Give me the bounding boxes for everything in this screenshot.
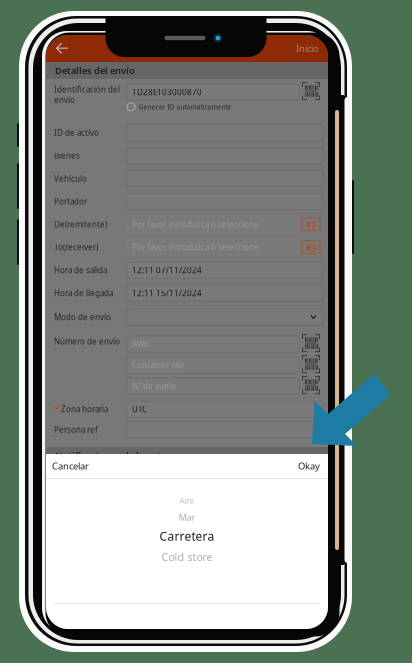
staticText: AWB	[132, 339, 149, 349]
staticText: Número de envío	[54, 336, 120, 347]
staticText: Aire	[179, 495, 194, 506]
button[interactable]: Portador	[46, 190, 328, 213]
staticText: Hora de llegada	[54, 288, 113, 298]
button[interactable]: Cold store	[46, 546, 328, 567]
staticText: Vehículo	[54, 173, 87, 184]
staticText: Inicio	[296, 42, 319, 55]
staticText: Hora de salida	[54, 265, 107, 275]
staticText: Detalles del envío	[55, 64, 135, 77]
staticText: To(receiver)	[54, 242, 98, 252]
staticText: 1D28E103000870	[132, 87, 202, 97]
staticText: Generar ID automáticamente	[138, 102, 231, 111]
button[interactable]: De(remitente)	[46, 213, 328, 236]
button[interactable]: Vehículo	[46, 167, 328, 190]
staticText: Modo de envío	[54, 312, 111, 322]
button[interactable]: Bienes	[46, 144, 328, 167]
staticText: 12:11 15/11/2024	[132, 288, 202, 298]
button[interactable]: Modo de envío	[46, 304, 328, 330]
staticText: De(remitente)	[54, 219, 107, 230]
button[interactable]: ID de activo	[46, 121, 328, 144]
staticText: Por favor, introduzca o seleccione	[132, 242, 259, 252]
button[interactable]: Número de envío	[46, 330, 328, 399]
button[interactable]: Cancelar	[46, 454, 146, 478]
staticText: Persona ref	[54, 424, 98, 435]
button[interactable]: Carretera	[46, 526, 328, 546]
button[interactable]: Identificación del envío	[46, 79, 328, 121]
staticText: Mar	[178, 511, 195, 523]
button[interactable]: Persona ref	[46, 419, 328, 440]
staticText: Cold store	[161, 550, 212, 564]
button[interactable]: Back	[46, 35, 92, 62]
staticText: Bienes	[54, 150, 80, 161]
staticText: 12:11 07/11/2024	[132, 265, 202, 275]
button[interactable]: Mar	[46, 508, 328, 526]
button[interactable]: Hora de llegada	[46, 282, 328, 304]
staticText: Cancelar	[52, 460, 89, 472]
staticText: UTC	[132, 404, 147, 414]
staticText: Portador	[54, 196, 87, 207]
staticText: Identificación del envío	[54, 84, 120, 105]
staticText: Notificaciones de la entrega	[55, 449, 181, 462]
staticText: N° de vuelo	[132, 381, 176, 391]
staticText: Okay	[298, 460, 320, 472]
staticText: ID de activo	[54, 127, 99, 138]
staticText: Carretera	[159, 528, 214, 544]
staticText: Container nbr	[132, 360, 184, 370]
button[interactable]: Hora de salida	[46, 259, 328, 282]
button[interactable]: Inicio	[268, 35, 328, 62]
staticText: *	[54, 402, 60, 416]
button[interactable]: To(receiver)	[46, 236, 328, 259]
button[interactable]: *	[46, 399, 328, 419]
button[interactable]: Aire	[46, 493, 328, 508]
button[interactable]: Okay	[228, 454, 328, 478]
staticText: Zona horaria	[61, 404, 108, 414]
staticText: Por favor, introduzca o seleccione	[132, 219, 259, 230]
